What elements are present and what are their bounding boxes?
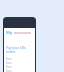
staticText: account bbox=[14, 30, 31, 36]
staticText: Item bbox=[6, 57, 12, 61]
staticText: Item bbox=[6, 65, 12, 69]
staticText: My bbox=[6, 30, 13, 36]
staticText: Item bbox=[6, 61, 12, 65]
staticText: Item bbox=[6, 69, 12, 72]
staticText: Pay your bills online bbox=[6, 46, 35, 54]
